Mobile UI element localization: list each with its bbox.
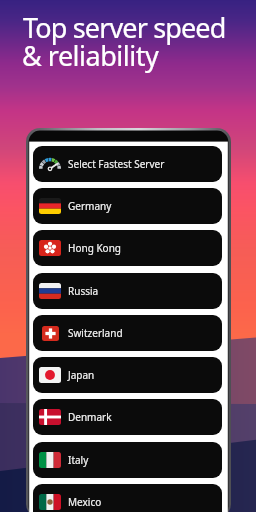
button[interactable]: Germany xyxy=(33,188,222,224)
button[interactable]: Switzerland xyxy=(33,315,222,351)
staticText: Hong Kong xyxy=(68,241,121,255)
button[interactable]: Mexico xyxy=(33,484,222,512)
staticText: Germany xyxy=(68,199,112,213)
button[interactable]: Japan xyxy=(33,357,222,393)
staticText: Mexico xyxy=(68,495,102,509)
staticText: Russia xyxy=(68,284,99,298)
staticText: Switzerland xyxy=(68,326,123,340)
button[interactable]: Italy xyxy=(33,442,222,478)
staticText: Japan xyxy=(68,368,95,382)
button[interactable]: Russia xyxy=(33,273,222,309)
button[interactable]: Select Fastest Server xyxy=(33,146,222,182)
button[interactable]: Denmark xyxy=(33,399,222,435)
staticText: & reliability xyxy=(22,37,159,74)
staticText: Select Fastest Server xyxy=(68,157,165,171)
staticText: Denmark xyxy=(68,410,112,424)
button[interactable]: Hong Kong xyxy=(33,230,222,266)
staticText: Top server speed xyxy=(23,9,226,46)
staticText: Italy xyxy=(68,453,89,467)
